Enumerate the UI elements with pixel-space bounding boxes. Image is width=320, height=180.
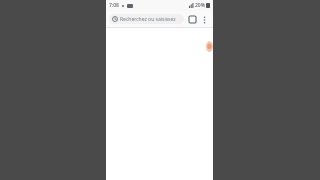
button[interactable]: Tab switcher (187, 14, 198, 25)
button[interactable]: More options (199, 14, 210, 25)
button[interactable]: Recherchez ou saisissez un (109, 14, 184, 24)
staticText: Recherchez ou saisissez un (120, 16, 181, 23)
staticText: 20% (195, 2, 205, 9)
staticText: 7:08 (109, 2, 119, 9)
